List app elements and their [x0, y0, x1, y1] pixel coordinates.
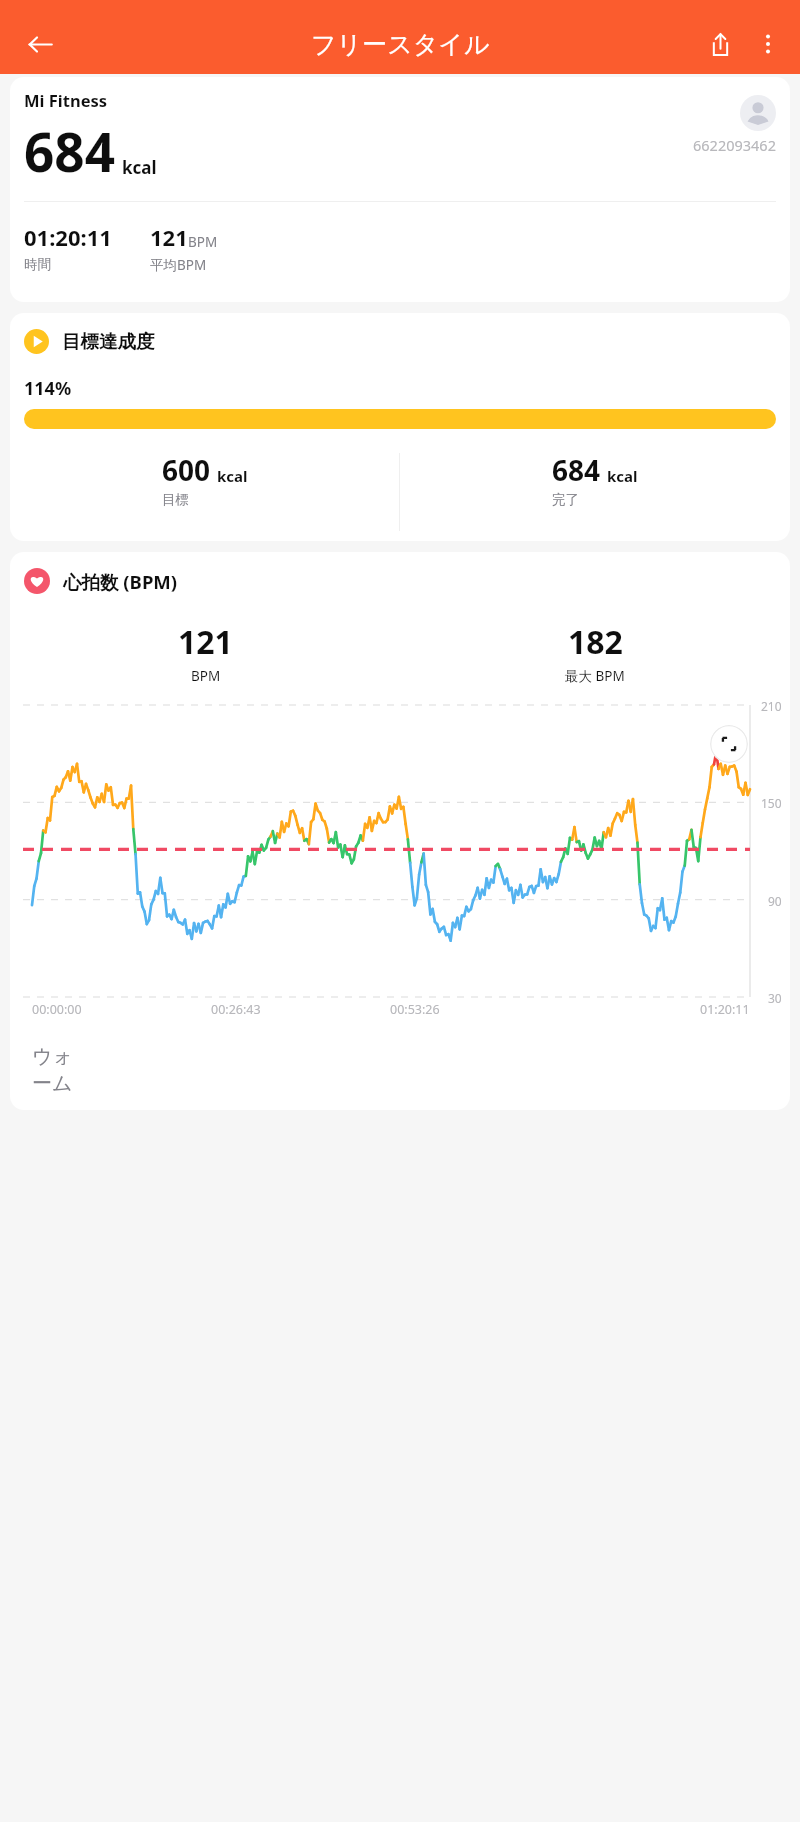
staticText: 30 — [768, 990, 782, 1006]
button[interactable]: Back — [16, 20, 64, 68]
staticText: 684 — [24, 115, 115, 187]
staticText: 600 — [162, 451, 211, 489]
button[interactable]: 心拍数 (BPM) — [24, 568, 776, 594]
staticText: 121 — [178, 620, 233, 664]
staticText: BPM — [188, 233, 218, 251]
staticText: 00:53:26 — [390, 1001, 440, 1018]
staticText: 心拍数 (BPM) — [63, 569, 178, 594]
staticText: kcal — [607, 466, 638, 486]
staticText: BPM — [191, 667, 221, 685]
staticText: 完了 — [552, 491, 579, 508]
staticText: ウォ — [32, 1044, 73, 1069]
staticText: 01:20:11 — [24, 222, 112, 252]
staticText: ーム — [32, 1071, 73, 1096]
staticText: Mi Fitness — [24, 89, 108, 111]
staticText: 90 — [768, 893, 782, 909]
button[interactable]: Expand chart — [710, 725, 748, 763]
button[interactable]: 目標達成度 — [24, 329, 776, 354]
staticText: kcal — [122, 156, 157, 179]
staticText: 平均BPM — [150, 256, 207, 274]
staticText: 210 — [761, 698, 782, 714]
staticText: 114% — [24, 376, 72, 401]
staticText: 最大 BPM — [565, 667, 625, 685]
staticText: 6622093462 — [693, 135, 776, 155]
button[interactable]: Profile — [740, 95, 776, 131]
staticText: 684 — [552, 451, 601, 489]
staticText: 01:20:11 — [700, 1001, 750, 1018]
staticText: フリースタイル — [311, 29, 490, 60]
staticText: 121 — [150, 222, 188, 252]
staticText: kcal — [217, 466, 248, 486]
staticText: 150 — [761, 795, 782, 811]
button[interactable]: More options — [744, 20, 792, 68]
staticText: 目標達成度 — [62, 330, 155, 353]
staticText: 時間 — [24, 256, 51, 273]
staticText: 00:00:00 — [32, 1001, 82, 1018]
staticText: 00:26:43 — [211, 1001, 261, 1018]
staticText: 目標 — [162, 491, 189, 508]
button[interactable]: Share — [696, 20, 744, 68]
staticText: 182 — [568, 620, 623, 664]
